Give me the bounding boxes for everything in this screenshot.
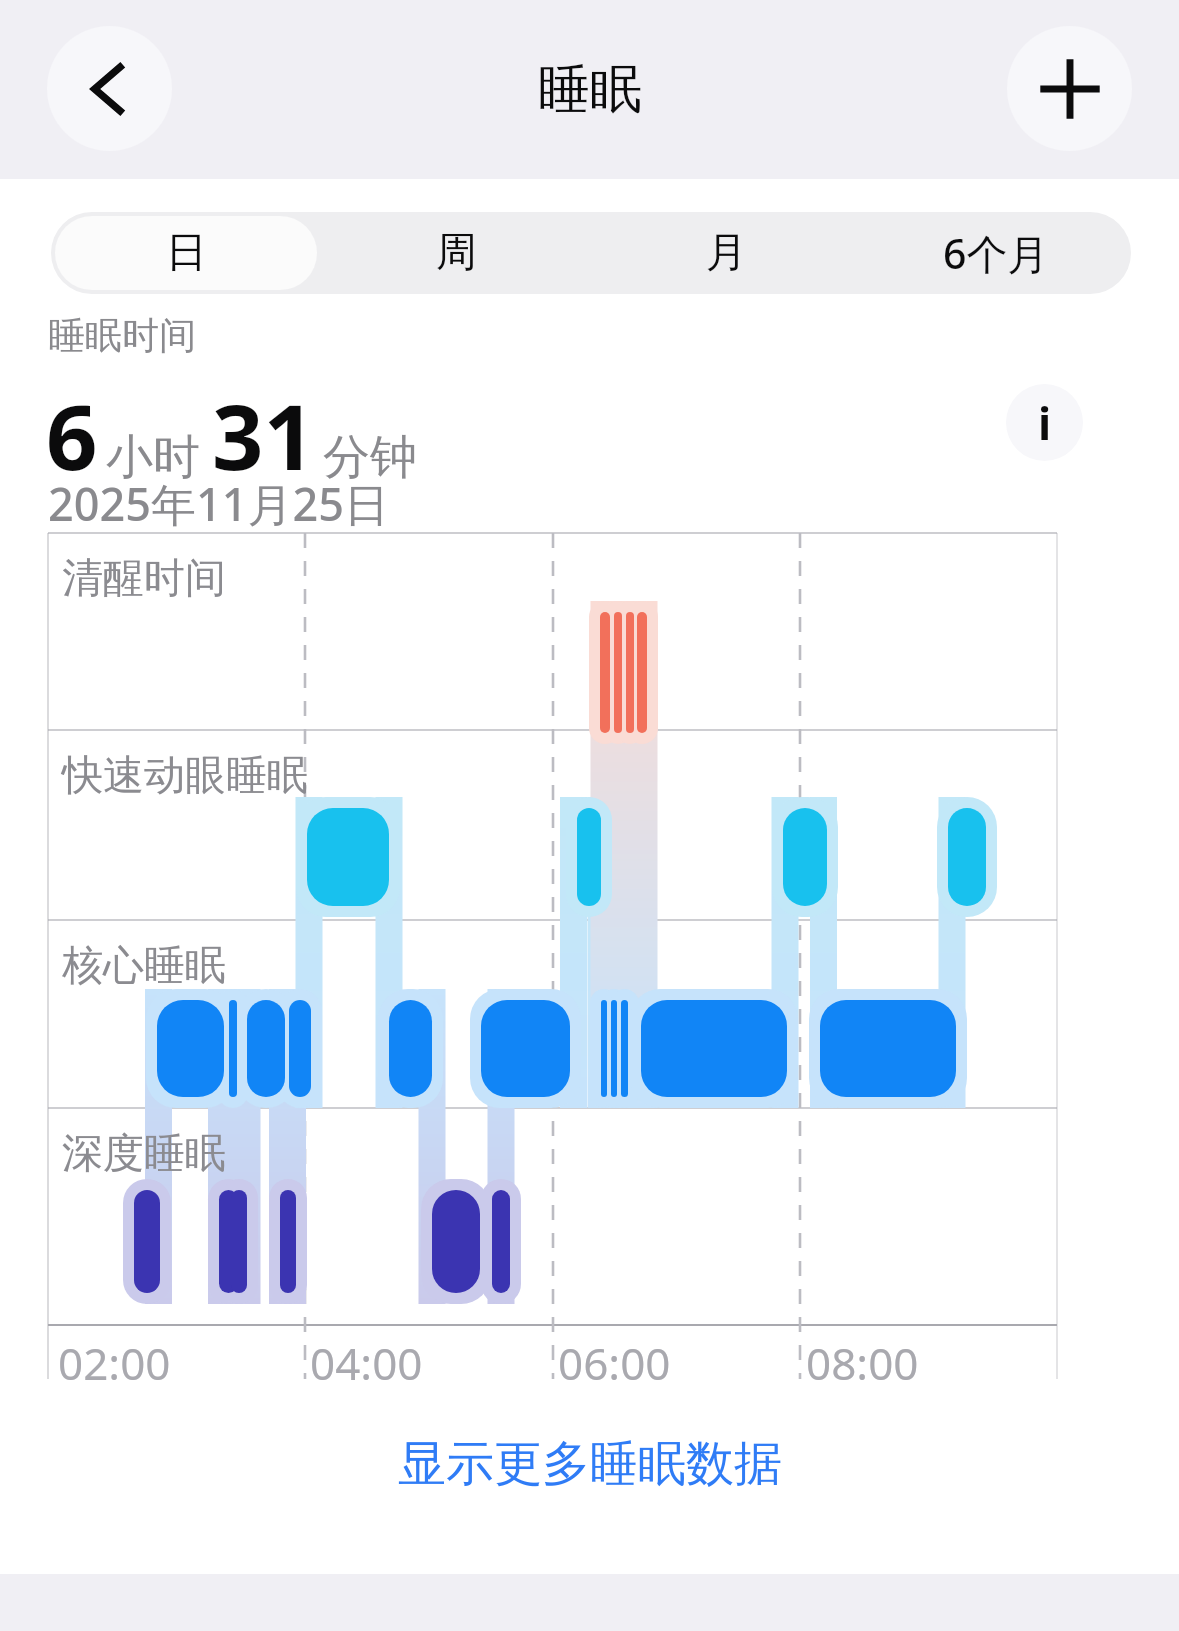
button[interactable]: 添加 [1007, 26, 1132, 151]
staticText: i [1038, 393, 1052, 453]
staticText: 睡眠 [538, 57, 642, 123]
staticText: 睡眠时间 [48, 312, 196, 359]
button[interactable]: 信息 [1006, 384, 1083, 461]
staticText: 08:00 [806, 1333, 919, 1393]
button[interactable]: 显示更多睡眠数据 [0, 1408, 1179, 1520]
button[interactable]: 日 [51, 212, 321, 294]
staticText: 2025年11月25日 [48, 473, 389, 534]
staticText: 04:00 [310, 1333, 423, 1393]
staticText: 6 [46, 374, 98, 497]
button[interactable]: 返回 [47, 26, 172, 151]
staticText: 月 [706, 227, 747, 279]
staticText: 快速动眼睡眠 [62, 750, 308, 802]
staticText: 深度睡眠 [62, 1128, 226, 1180]
button[interactable]: 6个月 [861, 212, 1131, 294]
staticText: 清醒时间 [62, 553, 226, 605]
button[interactable]: 周 [321, 212, 591, 294]
staticText: 06:00 [558, 1333, 671, 1393]
staticText: 周 [436, 227, 477, 279]
staticText: 核心睡眠 [62, 940, 226, 992]
staticText: 02:00 [58, 1333, 171, 1393]
button[interactable]: 月 [591, 212, 861, 294]
staticText: 31 [212, 374, 315, 497]
staticText: 显示更多睡眠数据 [398, 1434, 782, 1494]
staticText: 小时 [106, 428, 200, 487]
staticText: 分钟 [323, 428, 417, 487]
staticText: 6个月 [943, 225, 1049, 281]
staticText: 日 [166, 227, 207, 279]
